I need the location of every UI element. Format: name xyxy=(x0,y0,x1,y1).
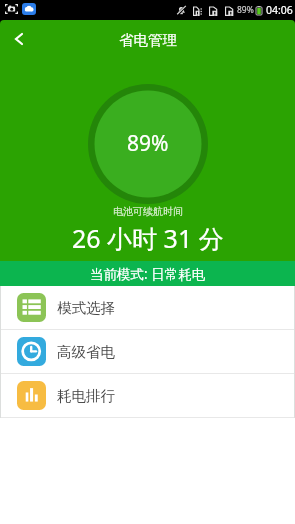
staticText: 当前模式: 日常耗电 xyxy=(90,265,206,283)
button[interactable]: 高级省电 xyxy=(0,330,295,373)
staticText: 89% xyxy=(127,129,169,158)
button[interactable]: 当前模式: 日常耗电 xyxy=(0,261,295,286)
button[interactable]: Back xyxy=(6,26,32,52)
staticText: 04:06 xyxy=(266,3,293,17)
staticText: 电池可续航时间 xyxy=(113,205,183,218)
staticText: 耗电排行 xyxy=(57,387,115,405)
staticText: 高级省电 xyxy=(57,343,115,361)
staticText: 26 小时 31 分 xyxy=(72,221,224,255)
staticText: 89% xyxy=(237,4,254,16)
button[interactable]: 模式选择 xyxy=(0,286,295,329)
staticText: 模式选择 xyxy=(57,299,115,317)
other: Screenshot xyxy=(5,4,18,14)
button[interactable]: 耗电排行 xyxy=(0,374,295,417)
staticText: 省电管理 xyxy=(119,31,177,49)
